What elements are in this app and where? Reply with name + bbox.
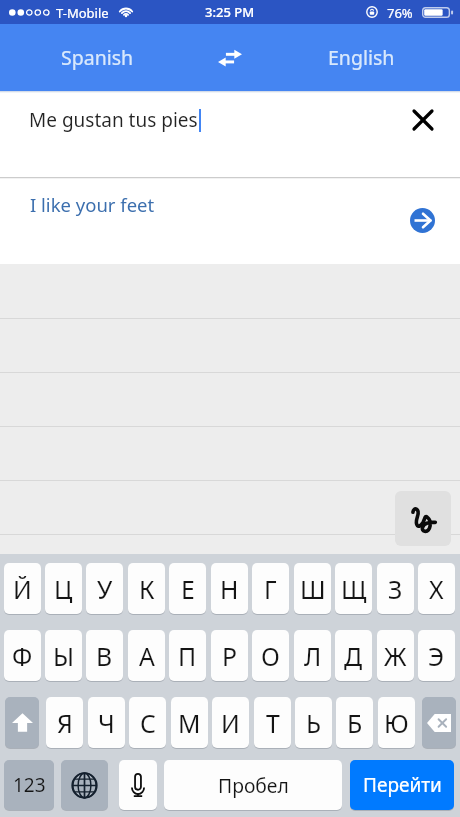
button[interactable]: Перейти [350, 760, 454, 811]
staticText: English [328, 44, 395, 71]
staticText: Н [220, 572, 239, 606]
button[interactable]: Щ [335, 563, 372, 615]
staticText: T-Mobile [56, 4, 109, 22]
staticText: Ж [384, 639, 407, 673]
button[interactable]: Е [169, 563, 206, 615]
staticText: Г [264, 572, 277, 606]
button[interactable]: Я [46, 697, 83, 749]
button[interactable]: Й [4, 563, 41, 615]
staticText: Ю [384, 706, 409, 740]
button[interactable]: Shift [5, 697, 39, 749]
staticText: Я [57, 706, 73, 740]
button[interactable]: Clear text [403, 100, 443, 140]
button[interactable]: Handwriting input [395, 491, 451, 546]
button[interactable]: В [86, 630, 123, 682]
staticText: Ш [300, 572, 326, 606]
button[interactable]: English [271, 24, 451, 91]
button[interactable]: Ы [45, 630, 82, 682]
staticText: З [388, 572, 403, 606]
staticText: К [139, 572, 155, 606]
staticText: I like your feet [30, 192, 155, 217]
staticText: У [97, 572, 113, 606]
button[interactable]: Ь [295, 697, 332, 749]
button[interactable]: Б [336, 697, 373, 749]
button[interactable]: Т [254, 697, 291, 749]
button[interactable]: Г [252, 563, 289, 615]
staticText: Т [266, 706, 280, 740]
button[interactable]: Пробел [164, 760, 342, 811]
button[interactable]: Swap languages [202, 33, 258, 83]
staticText: Ь [306, 706, 322, 740]
staticText: Ф [12, 639, 33, 673]
button[interactable]: Ж [377, 630, 414, 682]
button[interactable]: А [128, 630, 165, 682]
button[interactable]: Ф [4, 630, 41, 682]
staticText: О [261, 639, 280, 673]
button[interactable]: П [169, 630, 206, 682]
staticText: Е [181, 572, 195, 606]
button[interactable]: О [252, 630, 289, 682]
staticText: Л [304, 639, 322, 673]
staticText: Spanish [61, 44, 134, 71]
button[interactable]: Э [418, 630, 455, 682]
staticText: И [221, 706, 240, 740]
staticText: Me gustan tus pies [29, 107, 198, 133]
button[interactable]: 123 [4, 760, 54, 811]
staticText: 76% [387, 4, 413, 22]
button[interactable]: Dictate [119, 760, 157, 811]
button[interactable]: Spanish [7, 24, 187, 91]
button[interactable]: С [129, 697, 166, 749]
staticText: Ч [98, 706, 115, 740]
staticText: 123 [13, 772, 46, 798]
staticText: Перейти [363, 772, 442, 798]
staticText: Й [13, 572, 32, 606]
button[interactable]: Н [211, 563, 248, 615]
staticText: П [178, 639, 197, 673]
button[interactable]: Translate [404, 202, 440, 238]
button[interactable]: Change keyboard [61, 760, 108, 811]
button[interactable]: З [377, 563, 414, 615]
button[interactable]: Backspace [422, 697, 456, 749]
button[interactable]: Д [335, 630, 372, 682]
button[interactable]: Р [211, 630, 248, 682]
button[interactable]: И [212, 697, 249, 749]
button[interactable]: Ч [88, 697, 125, 749]
button[interactable]: Ш [294, 563, 331, 615]
button[interactable]: Л [294, 630, 331, 682]
staticText: 3:25 PM [205, 3, 255, 21]
staticText: Щ [341, 572, 367, 606]
staticText: Э [428, 639, 445, 673]
staticText: Пробел [218, 772, 289, 798]
staticText: Х [429, 572, 444, 606]
staticText: С [140, 706, 156, 740]
button[interactable]: Ц [45, 563, 82, 615]
button[interactable]: М [171, 697, 208, 749]
button[interactable]: Ю [378, 697, 415, 749]
staticText: А [139, 639, 155, 673]
staticText: В [96, 639, 113, 673]
button[interactable]: К [128, 563, 165, 615]
staticText: Ц [54, 572, 73, 606]
staticText: Ы [53, 639, 75, 673]
staticText: Р [222, 639, 238, 673]
button[interactable]: Х [418, 563, 455, 615]
button[interactable]: У [86, 563, 123, 615]
staticText: М [178, 706, 201, 740]
staticText: Д [344, 639, 363, 673]
staticText: Б [347, 706, 363, 740]
